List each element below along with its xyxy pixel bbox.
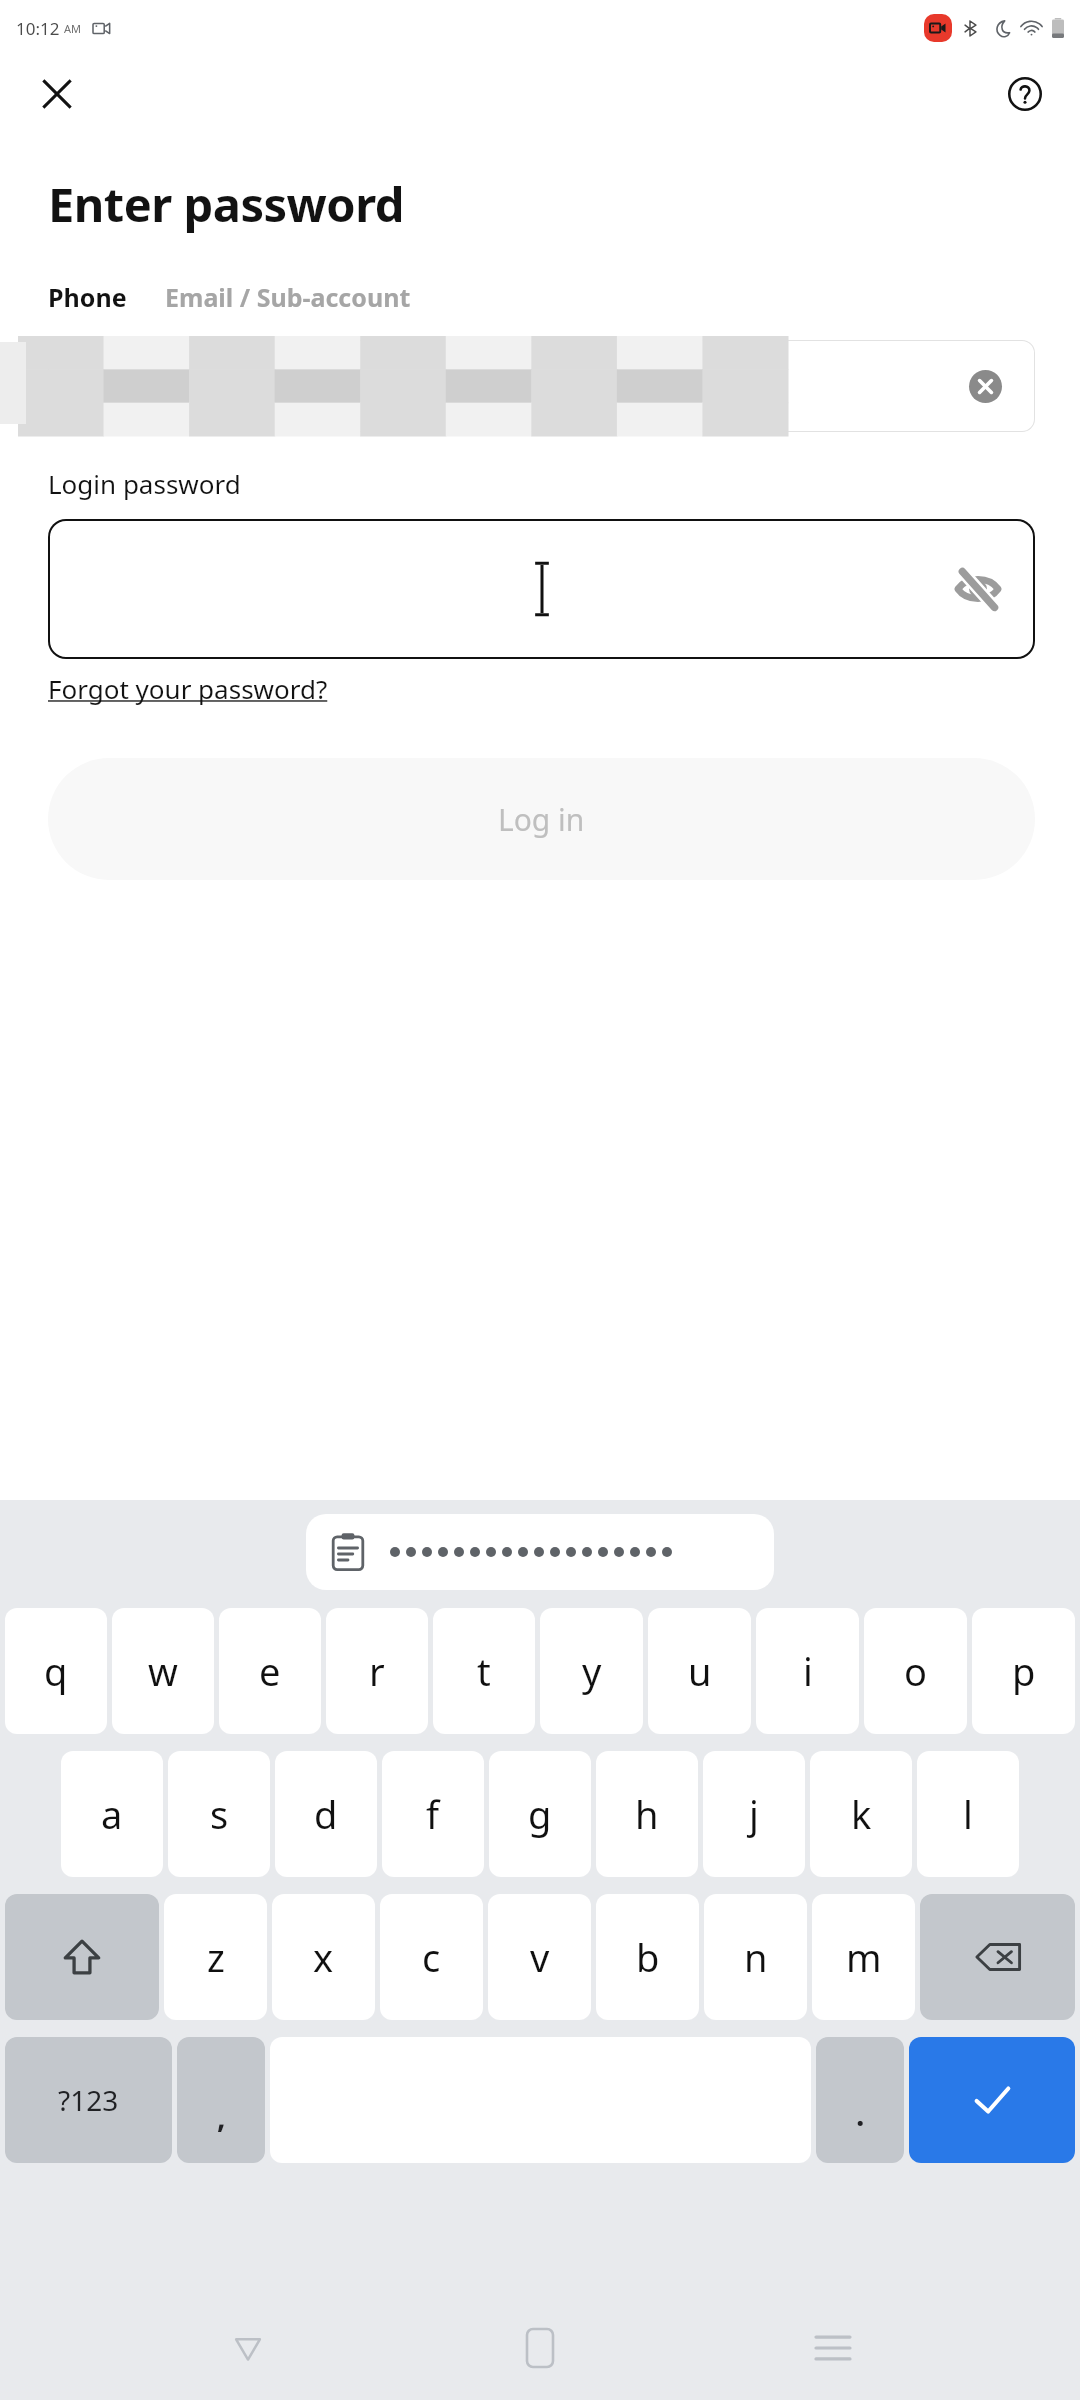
button[interactable]: s bbox=[168, 1751, 270, 1877]
button[interactable]: r bbox=[326, 1608, 428, 1734]
staticText: h bbox=[635, 1788, 659, 1840]
button[interactable]: g bbox=[489, 1751, 591, 1877]
staticText: Log in bbox=[498, 799, 585, 840]
button[interactable]: Help bbox=[998, 67, 1052, 121]
button[interactable]: Backspace bbox=[920, 1894, 1075, 2020]
button[interactable]: . bbox=[816, 2037, 904, 2163]
button[interactable]: Enter bbox=[909, 2037, 1075, 2163]
button[interactable]: j bbox=[703, 1751, 805, 1877]
staticText: c bbox=[422, 1931, 441, 1983]
button[interactable]: w bbox=[112, 1608, 214, 1734]
button[interactable]: u bbox=[648, 1608, 751, 1734]
staticText: Enter password bbox=[48, 172, 404, 236]
button[interactable]: Forgot your password? bbox=[48, 667, 328, 710]
staticText: Phone bbox=[48, 280, 127, 314]
button[interactable]: k bbox=[810, 1751, 912, 1877]
button[interactable]: Phone bbox=[48, 280, 131, 314]
staticText: l bbox=[963, 1788, 973, 1840]
button[interactable]: Back bbox=[203, 2303, 293, 2393]
staticText: b bbox=[636, 1931, 660, 1983]
button[interactable]: b bbox=[596, 1894, 699, 2020]
staticText: e bbox=[259, 1645, 281, 1697]
button[interactable]: Recents bbox=[788, 2303, 878, 2393]
staticText: r bbox=[369, 1645, 385, 1697]
button[interactable]: y bbox=[540, 1608, 643, 1734]
staticText: Login password bbox=[48, 466, 241, 501]
button[interactable]: e bbox=[219, 1608, 321, 1734]
button[interactable]: Shift bbox=[5, 1894, 159, 2020]
button[interactable]: n bbox=[704, 1894, 807, 2020]
button[interactable]: x bbox=[272, 1894, 375, 2020]
staticText: a bbox=[101, 1788, 123, 1840]
button[interactable]: h bbox=[596, 1751, 698, 1877]
button[interactable]: Log in bbox=[48, 758, 1035, 880]
staticText: f bbox=[426, 1788, 440, 1840]
button[interactable]: , bbox=[177, 2037, 265, 2163]
button[interactable]: Clear bbox=[963, 364, 1007, 408]
button[interactable]: c bbox=[380, 1894, 483, 2020]
staticText: p bbox=[1012, 1645, 1036, 1697]
button[interactable]: Close bbox=[30, 67, 84, 121]
button[interactable] bbox=[306, 1514, 774, 1590]
staticText: x bbox=[313, 1931, 334, 1983]
staticText: g bbox=[528, 1788, 552, 1840]
button[interactable]: t bbox=[433, 1608, 535, 1734]
button[interactable]: Clear bbox=[48, 340, 1035, 432]
staticText: , bbox=[217, 2096, 226, 2137]
button[interactable]: m bbox=[812, 1894, 915, 2020]
button[interactable]: f bbox=[382, 1751, 484, 1877]
button[interactable]: l bbox=[917, 1751, 1019, 1877]
staticText: d bbox=[314, 1788, 338, 1840]
staticText: t bbox=[477, 1645, 491, 1697]
staticText: . bbox=[856, 2094, 865, 2135]
staticText: Email / Sub-account bbox=[165, 280, 411, 314]
button[interactable]: Email / Sub-account bbox=[165, 280, 415, 314]
staticText: u bbox=[688, 1645, 712, 1697]
staticText: j bbox=[749, 1788, 759, 1840]
staticText: z bbox=[207, 1931, 225, 1983]
staticText: 10:12 bbox=[16, 17, 60, 40]
staticText: y bbox=[582, 1645, 602, 1697]
button[interactable]: v bbox=[488, 1894, 591, 2020]
staticText: v bbox=[530, 1931, 550, 1983]
button[interactable]: o bbox=[864, 1608, 967, 1734]
staticText: w bbox=[148, 1645, 178, 1697]
button[interactable]: d bbox=[275, 1751, 377, 1877]
button[interactable]: Home bbox=[495, 2303, 585, 2393]
button[interactable]: q bbox=[5, 1608, 107, 1734]
staticText: k bbox=[851, 1788, 872, 1840]
button[interactable]: Show password bbox=[48, 519, 1035, 659]
button[interactable]: i bbox=[756, 1608, 859, 1734]
staticText: s bbox=[210, 1788, 229, 1840]
staticText: ?123 bbox=[58, 2081, 119, 2119]
staticText: AM bbox=[64, 21, 82, 36]
staticText: i bbox=[803, 1645, 813, 1697]
staticText: o bbox=[904, 1645, 927, 1697]
staticText: Forgot your password? bbox=[48, 671, 328, 706]
button[interactable]: p bbox=[972, 1608, 1075, 1734]
staticText: n bbox=[744, 1931, 768, 1983]
button[interactable]: z bbox=[164, 1894, 267, 2020]
button[interactable]: ?123 bbox=[5, 2037, 172, 2163]
button[interactable]: Show password bbox=[947, 558, 1009, 620]
staticText: q bbox=[44, 1645, 68, 1697]
button[interactable]: a bbox=[61, 1751, 163, 1877]
staticText: m bbox=[846, 1931, 882, 1983]
